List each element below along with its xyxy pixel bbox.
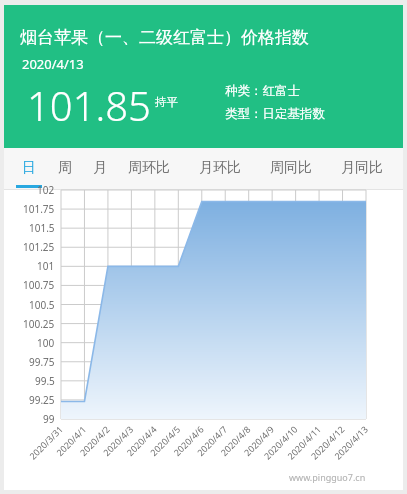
button[interactable]: 周 [52, 148, 78, 188]
staticText: 101.85 [27, 78, 151, 132]
button[interactable]: 周同比 [264, 148, 318, 188]
staticText: 种类：红富士 [225, 83, 300, 99]
staticText: 持平 [155, 95, 178, 109]
staticText: 类型：日定基指数 [225, 106, 325, 122]
staticText: 2020/4/13 [22, 55, 84, 73]
button[interactable]: 周环比 [122, 148, 176, 188]
staticText: 月 [87, 159, 113, 177]
staticText: 烟台苹果（一、二级红富士）价格指数 [20, 27, 309, 48]
staticText: 周 [52, 159, 78, 177]
button[interactable]: 月环比 [193, 148, 247, 188]
staticText: 周同比 [264, 159, 318, 177]
staticText: 月环比 [193, 159, 247, 177]
staticText: 周环比 [122, 159, 176, 177]
button[interactable]: 月同比 [335, 148, 389, 188]
button[interactable]: 月 [87, 148, 113, 188]
staticText: 月同比 [335, 159, 389, 177]
staticText: 日 [16, 159, 42, 177]
button[interactable]: 日 [16, 148, 42, 188]
